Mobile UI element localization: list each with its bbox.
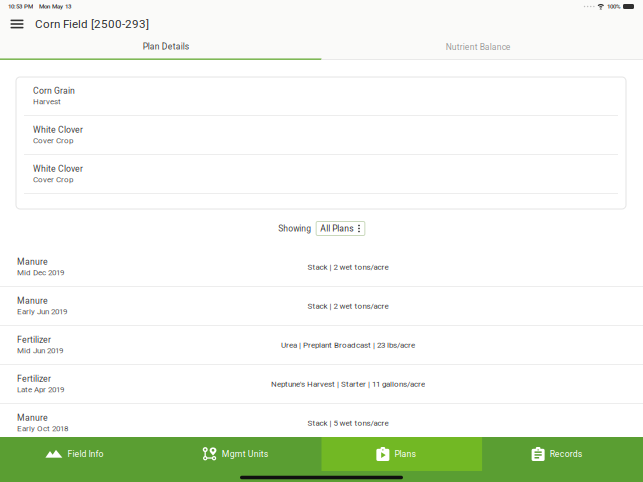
- button[interactable]: Plans: [321, 437, 482, 471]
- staticText: Records: [550, 449, 582, 459]
- staticText: Stack | 5 wet tons/acre: [307, 418, 388, 428]
- staticText: Cover Crop: [33, 136, 73, 145]
- staticText: Stack | 2 wet tons/acre: [307, 262, 388, 272]
- button[interactable]: White Clover: [16, 116, 626, 155]
- staticText: Fertilizer: [17, 335, 51, 345]
- staticText: White Clover: [33, 125, 83, 135]
- button[interactable]: Field Info: [0, 437, 161, 471]
- staticText: Field Info: [67, 449, 103, 459]
- staticText: Urea | Preplant Broadcast | 23 lbs/acre: [281, 340, 415, 350]
- staticText: Harvest: [33, 97, 61, 106]
- staticText: Plan Details: [143, 42, 189, 52]
- staticText: Manure: [17, 296, 48, 306]
- button[interactable]: Nutrient Balance: [321, 35, 643, 60]
- button[interactable]: Menu: [5, 13, 29, 35]
- button[interactable]: Fertilizer: [0, 365, 643, 404]
- button[interactable]: Manure: [0, 248, 643, 287]
- staticText: Cover Crop: [33, 175, 73, 184]
- staticText: Mon May 13: [39, 3, 71, 10]
- staticText: All Plans: [320, 223, 353, 233]
- staticText: White Clover: [33, 164, 83, 174]
- staticText: Mid Dec 2019: [17, 268, 64, 277]
- staticText: Fertilizer: [17, 374, 51, 384]
- staticText: Mgmt Units: [222, 449, 268, 459]
- staticText: Late Apr 2019: [17, 385, 64, 394]
- staticText: Showing: [278, 223, 311, 233]
- button[interactable]: White Clover: [16, 155, 626, 194]
- staticText: Corn Field [2500-293]: [35, 17, 149, 31]
- staticText: 10:53 PM: [8, 3, 33, 10]
- button[interactable]: Mgmt Units: [161, 437, 322, 471]
- staticText: Early Oct 2018: [17, 424, 68, 433]
- button[interactable]: Plan Details: [0, 35, 321, 60]
- staticText: Manure: [17, 257, 48, 267]
- staticText: 100%: [607, 3, 621, 10]
- staticText: Corn Grain: [33, 86, 75, 96]
- button[interactable]: Records: [482, 437, 643, 471]
- staticText: Early Jun 2019: [17, 307, 67, 316]
- staticText: Plans: [394, 449, 415, 459]
- staticText: Neptune's Harvest | Starter | 11 gallons…: [271, 379, 425, 389]
- button[interactable]: All Plans: [316, 221, 365, 235]
- button[interactable]: Manure: [0, 287, 643, 326]
- button[interactable]: Corn Grain: [16, 77, 626, 116]
- staticText: Nutrient Balance: [446, 42, 511, 52]
- button[interactable]: Manure: [0, 404, 643, 443]
- staticText: Manure: [17, 413, 48, 423]
- button[interactable]: Fertilizer: [0, 326, 643, 365]
- staticText: Mid Jun 2019: [17, 346, 63, 355]
- staticText: Stack | 2 wet tons/acre: [307, 301, 388, 311]
